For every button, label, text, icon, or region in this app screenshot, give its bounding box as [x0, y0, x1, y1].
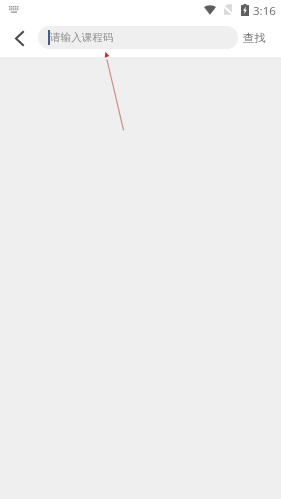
- staticText: 3:16: [253, 3, 276, 19]
- staticText: 请输入课程码: [50, 31, 114, 44]
- button[interactable]: Back: [4, 20, 34, 56]
- staticText: 查找: [243, 31, 266, 45]
- button[interactable]: 查找: [238, 20, 281, 56]
- button[interactable]: 请输入课程码: [38, 26, 238, 49]
